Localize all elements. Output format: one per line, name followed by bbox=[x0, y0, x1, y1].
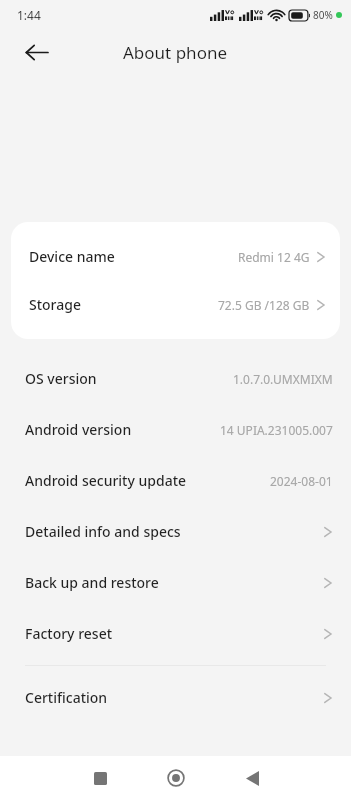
staticText: Storage bbox=[29, 295, 81, 314]
staticText: Android security update bbox=[25, 471, 187, 490]
button[interactable]: Recent apps bbox=[73, 756, 127, 800]
staticText: OS version bbox=[25, 369, 97, 388]
staticText: Android version bbox=[25, 420, 132, 439]
staticText: 14 UPIA.231005.007 bbox=[220, 422, 333, 438]
button[interactable]: Storage bbox=[11, 283, 340, 326]
staticText: 72.5 GB /128 GB bbox=[218, 297, 310, 313]
staticText: Device name bbox=[29, 247, 115, 266]
button[interactable]: Android security update bbox=[0, 455, 351, 506]
staticText: 2024-08-01 bbox=[270, 473, 333, 489]
staticText: 1.0.7.0.UMXMIXM bbox=[233, 371, 333, 387]
staticText: 1:44 bbox=[17, 7, 41, 23]
staticText: Back up and restore bbox=[25, 573, 159, 592]
button[interactable]: Factory reset bbox=[0, 608, 351, 659]
button[interactable]: OS version bbox=[0, 353, 351, 404]
staticText: Detailed info and specs bbox=[25, 522, 181, 541]
button[interactable]: Device name bbox=[11, 235, 340, 278]
staticText: 80% bbox=[313, 8, 333, 22]
staticText: Redmi 12 4G bbox=[238, 249, 310, 265]
button[interactable]: Back up and restore bbox=[0, 557, 351, 608]
button[interactable]: Android version bbox=[0, 404, 351, 455]
button[interactable]: Detailed info and specs bbox=[0, 506, 351, 557]
button[interactable]: Certification bbox=[0, 672, 351, 723]
staticText: Certification bbox=[25, 688, 108, 707]
button[interactable]: Home bbox=[149, 756, 203, 800]
staticText: Factory reset bbox=[25, 624, 113, 643]
staticText: About phone bbox=[123, 41, 228, 64]
button[interactable]: Back bbox=[225, 756, 279, 800]
button[interactable]: Back bbox=[14, 30, 58, 74]
